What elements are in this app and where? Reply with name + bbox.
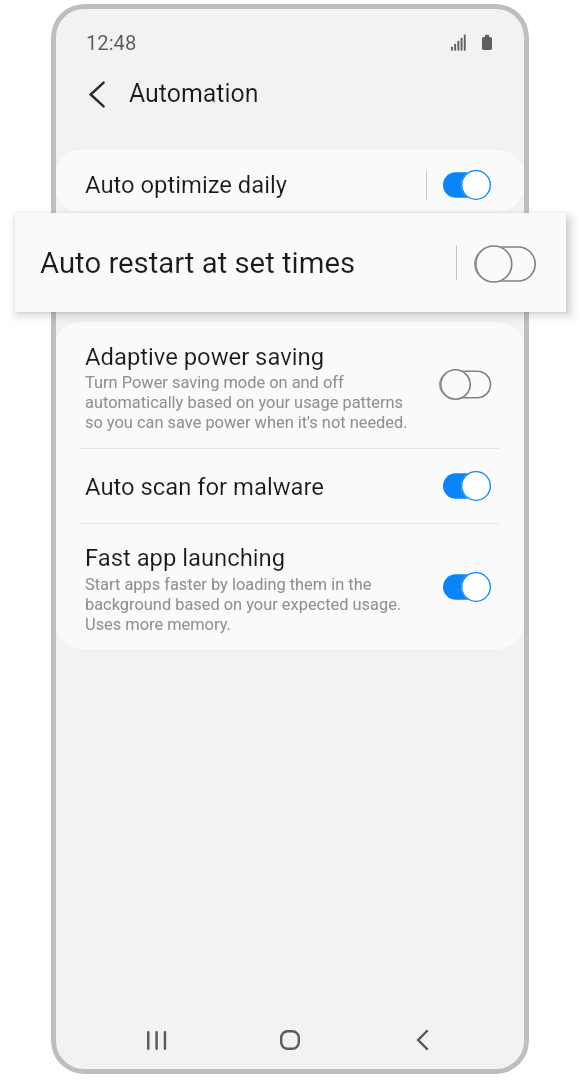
button[interactable]: Switch on (442, 571, 492, 603)
button[interactable]: Home (223, 1010, 356, 1070)
button[interactable]: Switch on (442, 169, 492, 201)
staticText: Auto scan for malware (85, 473, 324, 501)
button[interactable]: Switch off (439, 368, 492, 401)
staticText: Fast app launching (85, 544, 286, 572)
staticText: Automation (129, 79, 259, 108)
button[interactable]: Switch on (442, 470, 492, 502)
button[interactable]: Recent apps (90, 1010, 223, 1070)
staticText: Auto optimize daily (85, 171, 288, 199)
button[interactable]: Adaptive power saving (55, 322, 524, 448)
button[interactable]: Auto scan for malware (55, 449, 524, 523)
staticText: Adaptive power saving (85, 343, 324, 371)
button[interactable]: Auto optimize daily (55, 150, 524, 212)
button[interactable]: Auto restart at set times (15, 213, 566, 312)
button[interactable]: Fast app launching (55, 524, 524, 649)
button[interactable]: Back (356, 1010, 489, 1070)
staticText: 12:48 (86, 31, 137, 55)
staticText: Turn Power saving mode on and off automa… (85, 372, 408, 432)
button[interactable]: Switch off (474, 244, 536, 284)
staticText: Auto restart at set times (40, 246, 356, 280)
button[interactable]: Navigate up (73, 71, 121, 118)
staticText: Start apps faster by loading them in the… (85, 574, 402, 634)
